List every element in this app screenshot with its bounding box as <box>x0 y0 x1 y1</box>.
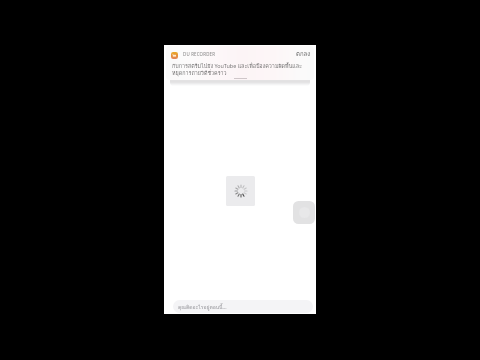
button[interactable]: ตกลง <box>296 49 311 59</box>
staticText: DU RECORDER <box>183 51 216 57</box>
button[interactable]: DU RECORDER <box>166 46 314 80</box>
button[interactable]: Screen recorder floating button <box>293 201 315 224</box>
button[interactable]: คุณคิดอะไรอยู่ตอนนี้... <box>173 300 313 313</box>
staticText: กับการสตรีมไปยัง YouTube และเพื่อป้องควา… <box>172 62 310 78</box>
staticText: คุณคิดอะไรอยู่ตอนนี้... <box>178 303 227 311</box>
